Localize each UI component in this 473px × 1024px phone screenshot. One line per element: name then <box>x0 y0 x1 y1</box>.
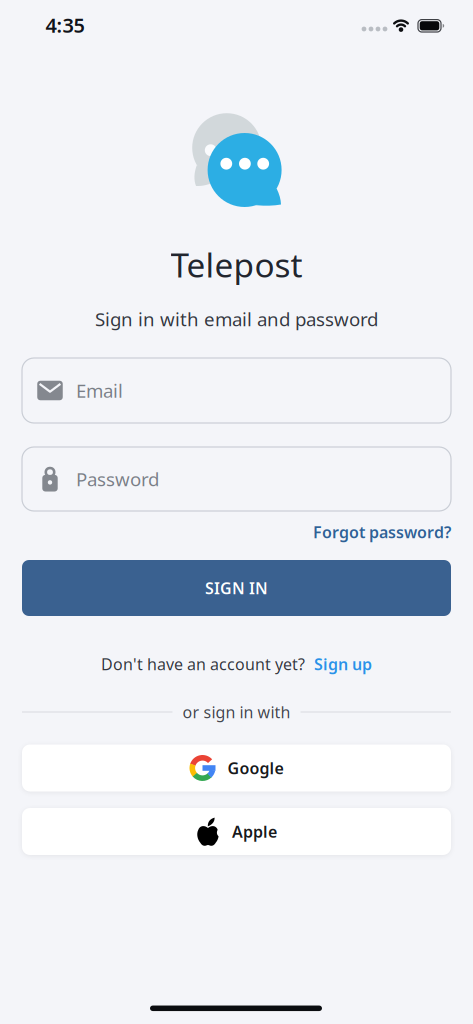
button[interactable]: SIGN IN <box>22 560 451 616</box>
staticText: Email <box>76 378 123 403</box>
button[interactable]: Forgot password? <box>313 521 451 543</box>
button[interactable]: Sign up <box>314 653 372 675</box>
staticText: Password <box>76 467 159 491</box>
staticText: Telepost <box>170 242 302 287</box>
button[interactable]: Apple <box>22 808 451 855</box>
staticText: 4:35 <box>45 12 84 38</box>
button[interactable]: Email <box>22 358 451 423</box>
staticText: Forgot password? <box>313 521 451 543</box>
staticText: Sign up <box>314 653 372 675</box>
staticText: Apple <box>232 821 277 842</box>
staticText: SIGN IN <box>205 577 268 599</box>
button[interactable]: Google <box>22 744 451 791</box>
staticText: or sign in with <box>182 701 290 723</box>
button[interactable]: Password <box>22 447 451 511</box>
staticText: Google <box>227 757 283 779</box>
staticText: Don't have an account yet? <box>101 653 305 675</box>
staticText: Sign in with email and password <box>95 307 378 331</box>
